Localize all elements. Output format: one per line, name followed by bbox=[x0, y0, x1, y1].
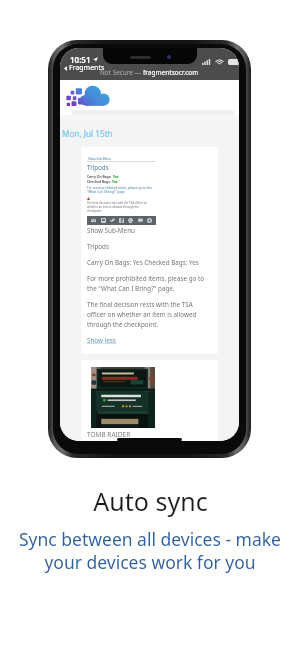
button[interactable]: Show less bbox=[87, 336, 116, 345]
button[interactable]: Share bbox=[87, 216, 156, 225]
staticText: TOMB RAIDER bbox=[87, 430, 131, 439]
staticText: Show Sub-Menu bbox=[88, 157, 111, 161]
staticText: fragmentsocr.com bbox=[143, 68, 199, 77]
staticText: The final decision rests with the TSA of… bbox=[87, 300, 197, 329]
staticText: Yes bbox=[112, 179, 118, 183]
staticText: Fragments bbox=[69, 63, 105, 73]
button[interactable]: Fragments bbox=[63, 62, 106, 74]
staticText: Show Sub-Menu bbox=[87, 226, 135, 235]
staticText: Tripods bbox=[87, 242, 109, 251]
staticText: Sync between all devices - make your dev… bbox=[19, 527, 281, 574]
staticText: Mon, Jul 15th bbox=[62, 128, 113, 139]
staticText: Yes bbox=[113, 174, 119, 178]
staticText: Carry On Bags: bbox=[87, 174, 112, 178]
staticText: The final decision rests with the TSA of… bbox=[87, 201, 148, 213]
staticText: Tripods bbox=[87, 163, 109, 171]
staticText: Checked Bags: bbox=[87, 179, 111, 183]
button[interactable]: TOMB RAIDER bbox=[81, 360, 218, 441]
staticText: Not Secure — bbox=[100, 68, 143, 77]
staticText: For more prohibited items, please go to … bbox=[87, 274, 205, 293]
staticText: Carry On Bags: Yes Checked Bags: Yes bbox=[87, 258, 199, 267]
staticText: For more prohibited items, please go to … bbox=[87, 186, 152, 194]
staticText: 10:51 bbox=[70, 54, 91, 65]
button[interactable]: Not Secure — bbox=[60, 68, 239, 77]
button[interactable]: Show Sub-Menu bbox=[81, 147, 218, 354]
staticText: Auto sync bbox=[93, 484, 208, 518]
